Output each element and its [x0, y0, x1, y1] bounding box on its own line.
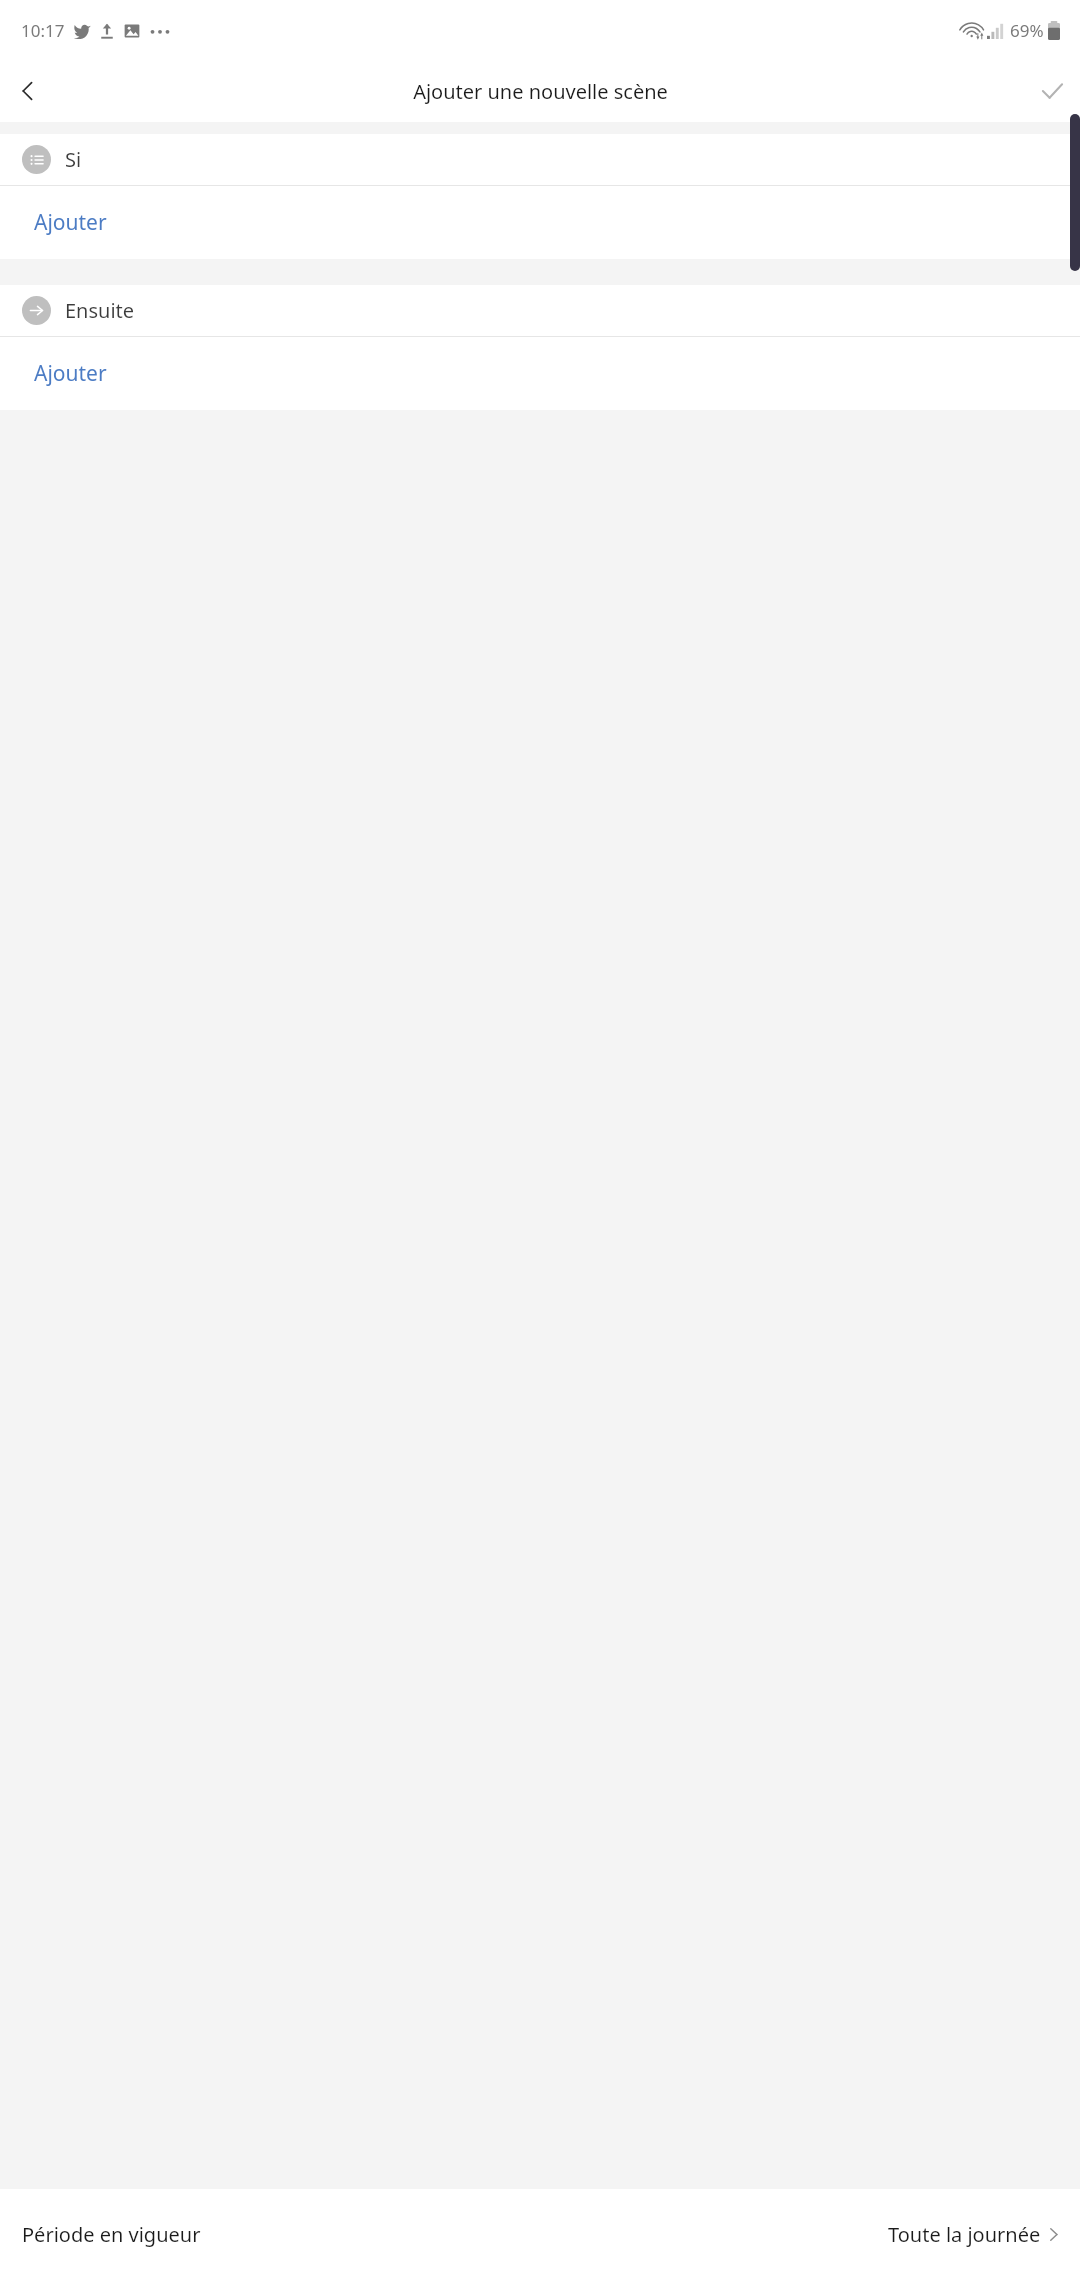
button[interactable]: Confirm: [1024, 63, 1080, 119]
staticText: Ajouter une nouvelle scène: [413, 78, 668, 105]
button[interactable]: Ajouter: [0, 337, 1080, 410]
staticText: Toute la journée: [888, 2221, 1041, 2248]
button[interactable]: Back: [0, 63, 56, 119]
staticText: Période en vigueur: [22, 2221, 201, 2248]
staticText: 69%: [1010, 19, 1044, 42]
staticText: Si: [65, 146, 82, 173]
button[interactable]: Période en vigueur: [0, 2189, 1080, 2280]
staticText: Ajouter: [34, 359, 107, 388]
staticText: Ajouter: [34, 208, 107, 237]
staticText: 10:17: [21, 19, 65, 42]
button[interactable]: Ajouter: [0, 186, 1080, 259]
staticText: Ensuite: [65, 297, 135, 324]
button[interactable]: Si: [0, 134, 1080, 185]
button[interactable]: Ensuite: [0, 285, 1080, 336]
